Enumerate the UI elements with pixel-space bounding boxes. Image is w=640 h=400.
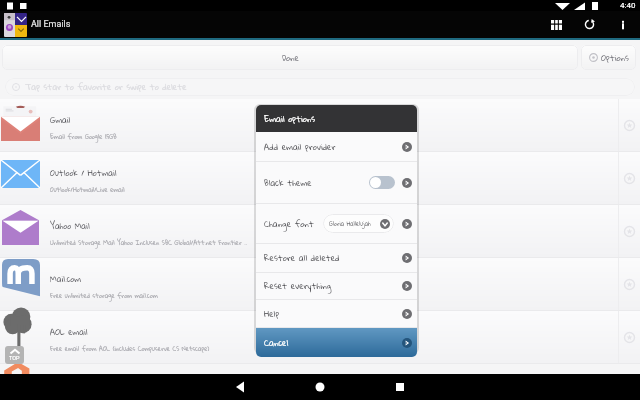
staticText: Email options [264,111,316,127]
button[interactable]: Done [2,45,578,70]
button[interactable]: Yahoo Mail [0,205,640,257]
staticText: Restore all deleted [264,250,340,266]
button[interactable]: Refresh [573,11,606,38]
button[interactable]: Black theme [256,162,417,203]
button[interactable]: Favorite [619,258,640,310]
button[interactable]: Favorite [619,311,640,363]
button[interactable]: Outlook / Hotmail [0,152,640,204]
button[interactable]: Favorite [619,99,640,151]
staticText: 4:40 [620,1,636,10]
staticText: Help [264,306,280,322]
staticText: Reset everything [264,278,332,294]
button[interactable]: Help [256,300,417,327]
staticText: Add email provider [264,139,336,155]
button[interactable]: Add email provider [256,132,417,161]
staticText: Free unlimited storage from mail.com [50,290,158,301]
staticText: Free email from AOL (includes Compuserve… [50,343,210,354]
staticText: Yahoo Mail [50,218,90,233]
button[interactable]: Change font [256,204,417,243]
staticText: Mail.com [50,271,81,286]
button[interactable]: More options [606,11,639,38]
button[interactable]: Favorite [619,152,640,204]
staticText: Unlimited Storage Mail Yahoo Inclusen SB… [50,237,247,248]
button[interactable]: Gmail [0,99,640,151]
button[interactable] [369,176,395,189]
button[interactable]: Cancel [256,328,417,357]
staticText: Change font [264,216,314,232]
staticText: Outlook / Hotmail [50,165,117,180]
staticText: AOL email [50,324,88,339]
staticText: Black theme [264,175,312,191]
button[interactable]: Grid view [539,11,573,38]
button[interactable]: Restore all deleted [256,244,417,272]
staticText: Email from Google 15GB [50,131,117,142]
staticText: Done [282,50,299,66]
button[interactable]: AOL email [0,311,640,363]
button[interactable]: Options [581,45,636,70]
staticText: Outlook/Hotmail/Live email [50,184,125,195]
staticText: Options [601,50,629,66]
button[interactable]: Favorite [619,205,640,257]
button[interactable]: Reset everything [256,273,417,299]
staticText: Tap star to favorite or swipe to delete [25,79,187,95]
staticText: All Emails [31,19,71,30]
button[interactable]: Scroll to top [5,346,24,364]
staticText: TOP [9,355,20,361]
staticText: Gmail [50,112,71,127]
button[interactable]: Mail.com [0,258,640,310]
staticText: Gloria Hallelujah [329,218,371,229]
staticText: Cancel [264,335,289,351]
